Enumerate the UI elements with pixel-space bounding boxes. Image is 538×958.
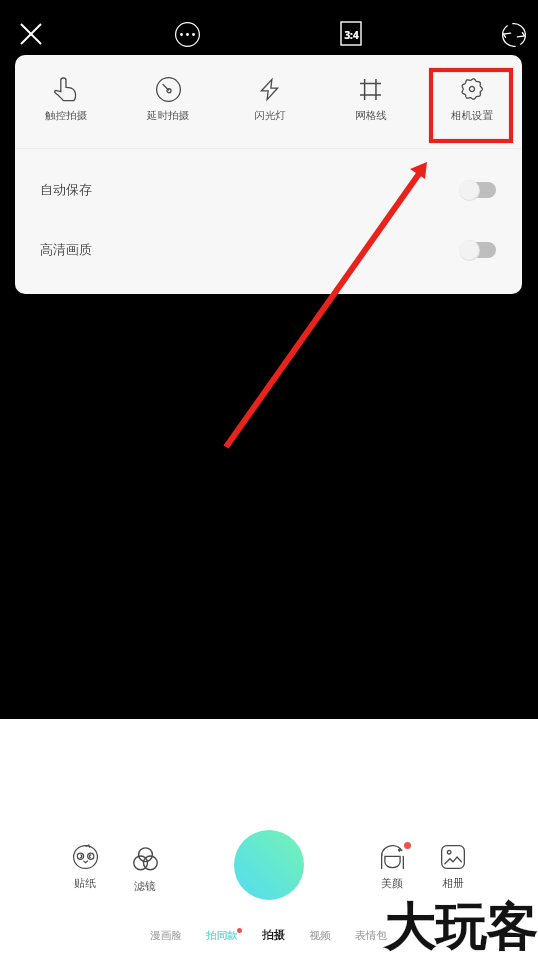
staticText: 漫画脸 (150, 929, 182, 942)
button[interactable]: 触控拍摄 (15, 55, 117, 148)
staticText: 相机设置 (451, 109, 493, 122)
button[interactable]: 拍同款 (194, 924, 250, 947)
button[interactable]: 滤镜 (117, 845, 173, 893)
button[interactable]: 相册 (425, 845, 481, 890)
button[interactable]: 漫画脸 (138, 924, 194, 947)
staticText: 闪光灯 (254, 109, 286, 122)
staticText: 美颜 (381, 876, 403, 890)
button[interactable]: 自动保存 (15, 159, 522, 219)
button[interactable]: 网格线 (320, 55, 421, 148)
staticText: 大玩客 (384, 896, 537, 958)
staticText: 视频 (309, 929, 331, 942)
button[interactable]: 高清画质 (15, 219, 522, 279)
staticText: 高清画质 (40, 241, 92, 257)
button[interactable]: More options (167, 14, 207, 54)
button[interactable]: 美颜 (364, 845, 420, 890)
button[interactable]: Aspect ratio 3 to 4 (331, 13, 371, 53)
button[interactable]: 贴纸 (57, 845, 113, 890)
button[interactable]: Shutter (234, 830, 304, 900)
button[interactable]: 相机设置 (421, 55, 522, 148)
button[interactable]: 拍摄 (250, 923, 297, 947)
staticText: 3:4 (344, 28, 359, 42)
button[interactable]: Close (9, 12, 53, 56)
staticText: 拍摄 (262, 928, 285, 942)
button[interactable]: 视频 (297, 924, 343, 947)
staticText: 自动保存 (40, 181, 92, 197)
staticText: 贴纸 (74, 876, 96, 890)
button[interactable]: 表情包 (343, 924, 399, 947)
button[interactable]: 延时拍摄 (117, 55, 219, 148)
staticText: 滤镜 (134, 879, 156, 893)
staticText: 延时拍摄 (147, 109, 189, 122)
staticText: 相册 (442, 876, 464, 890)
button[interactable]: Switch camera (493, 14, 535, 56)
staticText: 网格线 (355, 109, 387, 122)
button[interactable]: 闪光灯 (219, 55, 320, 148)
staticText: 拍同款 (206, 929, 238, 942)
staticText: 表情包 (355, 929, 387, 942)
staticText: 触控拍摄 (45, 109, 87, 122)
